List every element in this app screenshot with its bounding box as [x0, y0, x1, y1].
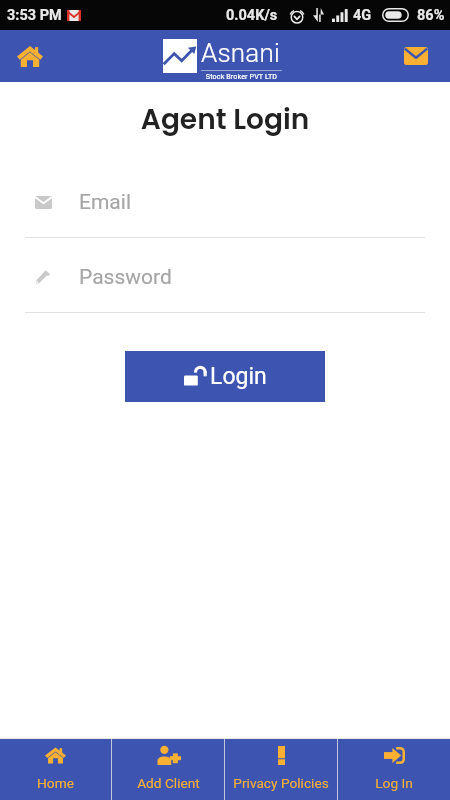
button[interactable]: Home: [8, 34, 52, 78]
button[interactable]: Mail: [396, 36, 436, 76]
staticText: Add Client: [137, 775, 200, 791]
button[interactable]: Add Client: [112, 739, 224, 800]
staticText: Agent Login: [0, 100, 450, 139]
button[interactable]: Log In: [338, 739, 450, 800]
staticText: Log In: [375, 775, 413, 791]
staticText: Stock Broker PVT LTD: [201, 72, 282, 80]
staticText: Password: [79, 265, 172, 290]
staticText: Privacy Policies: [233, 775, 329, 791]
staticText: Email: [79, 190, 131, 215]
staticText: Asnani: [201, 38, 280, 68]
staticText: 3:53 PM: [7, 7, 62, 24]
button[interactable]: Login: [125, 351, 325, 402]
staticText: Home: [37, 775, 74, 791]
staticText: 0.04K/s: [226, 7, 278, 24]
staticText: Login: [210, 363, 267, 390]
staticText: 86%: [417, 7, 445, 24]
staticText: 4G: [353, 7, 372, 24]
button[interactable]: Home: [0, 739, 111, 800]
button[interactable]: Privacy Policies: [225, 739, 337, 800]
